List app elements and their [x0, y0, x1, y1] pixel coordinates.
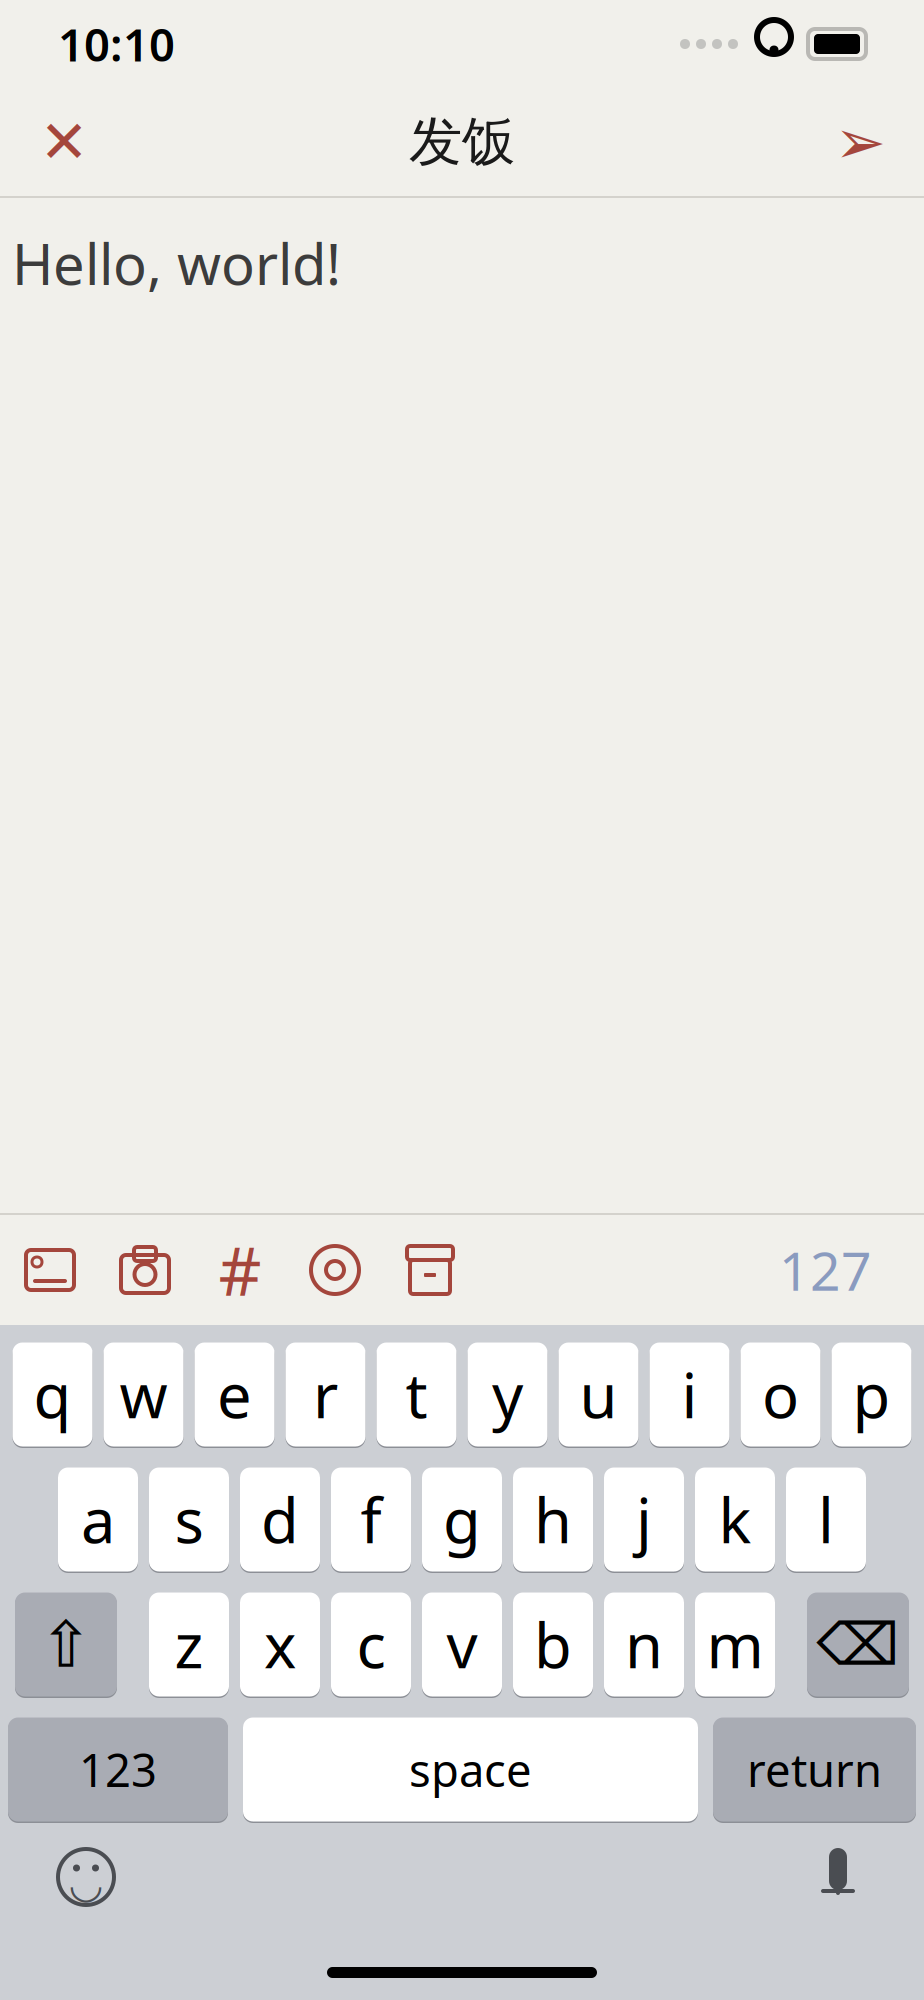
button[interactable]: r: [285, 1341, 365, 1448]
staticText: ⇧: [39, 1608, 93, 1681]
button[interactable]: o: [740, 1341, 820, 1448]
button[interactable]: Send: [830, 100, 924, 184]
button[interactable]: Shift: [15, 1591, 117, 1698]
button[interactable]: v: [422, 1591, 502, 1698]
button[interactable]: u: [558, 1341, 638, 1448]
button[interactable]: t: [376, 1341, 456, 1448]
button[interactable]: Add photo: [22, 1244, 78, 1296]
button[interactable]: n: [604, 1591, 684, 1698]
staticText: h: [534, 1479, 572, 1560]
button[interactable]: x: [240, 1591, 320, 1698]
staticText: i: [681, 1354, 697, 1435]
button[interactable]: Mention: [307, 1244, 363, 1296]
button[interactable]: b: [513, 1591, 593, 1698]
staticText: j: [636, 1479, 652, 1560]
button[interactable]: g: [422, 1466, 502, 1573]
staticText: ⌫: [816, 1611, 899, 1678]
staticText: o: [762, 1354, 799, 1435]
staticText: y: [492, 1354, 523, 1435]
staticText: l: [818, 1479, 834, 1560]
button[interactable]: 123: [8, 1716, 228, 1823]
button[interactable]: l: [786, 1466, 866, 1573]
staticText: t: [405, 1354, 427, 1435]
staticText: q: [33, 1354, 71, 1435]
staticText: c: [356, 1604, 385, 1685]
button[interactable]: f: [331, 1466, 411, 1573]
staticText: v: [446, 1604, 477, 1685]
button[interactable]: Close: [0, 100, 94, 184]
button[interactable]: q: [12, 1341, 92, 1448]
staticText: b: [534, 1604, 572, 1685]
staticText: d: [261, 1479, 299, 1560]
button[interactable]: Hashtag: [212, 1244, 268, 1296]
button[interactable]: w: [103, 1341, 183, 1448]
staticText: p: [852, 1354, 890, 1435]
button[interactable]: space: [243, 1716, 698, 1823]
staticText: n: [625, 1604, 663, 1685]
staticText: Hello, world!: [12, 226, 341, 300]
staticText: ➢: [834, 107, 885, 177]
staticText: g: [443, 1479, 481, 1560]
staticText: z: [174, 1604, 203, 1685]
button[interactable]: Dictation: [800, 1839, 876, 1915]
staticText: space: [409, 1739, 532, 1800]
button[interactable]: y: [467, 1341, 547, 1448]
staticText: e: [217, 1354, 252, 1435]
staticText: a: [81, 1479, 115, 1560]
staticText: return: [747, 1739, 882, 1800]
staticText: ◡: [68, 1861, 103, 1907]
button[interactable]: m: [695, 1591, 775, 1698]
staticText: m: [706, 1604, 763, 1685]
staticText: k: [718, 1479, 751, 1560]
staticText: 发饭: [409, 109, 515, 175]
button[interactable]: Emoji: [48, 1839, 124, 1915]
staticText: u: [579, 1354, 617, 1435]
staticText: r: [313, 1354, 338, 1435]
button[interactable]: h: [513, 1466, 593, 1573]
staticText: w: [119, 1354, 167, 1435]
staticText: 127: [779, 1235, 872, 1305]
staticText: 10:10: [58, 14, 175, 74]
button[interactable]: z: [149, 1591, 229, 1698]
button[interactable]: i: [649, 1341, 729, 1448]
button[interactable]: s: [149, 1466, 229, 1573]
button[interactable]: e: [194, 1341, 274, 1448]
button[interactable]: Delete: [807, 1591, 909, 1698]
staticText: 123: [79, 1739, 157, 1800]
staticText: x: [264, 1604, 296, 1685]
staticText: s: [174, 1479, 203, 1560]
button[interactable]: p: [831, 1341, 911, 1448]
staticText: ✕: [39, 109, 88, 175]
staticText: #: [218, 1226, 261, 1314]
button[interactable]: k: [695, 1466, 775, 1573]
button[interactable]: Archive: [402, 1244, 458, 1296]
button[interactable]: c: [331, 1591, 411, 1698]
button[interactable]: d: [240, 1466, 320, 1573]
button[interactable]: Camera: [117, 1244, 173, 1296]
staticText: f: [360, 1479, 381, 1560]
button[interactable]: return: [713, 1716, 916, 1823]
button[interactable]: a: [58, 1466, 138, 1573]
button[interactable]: j: [604, 1466, 684, 1573]
